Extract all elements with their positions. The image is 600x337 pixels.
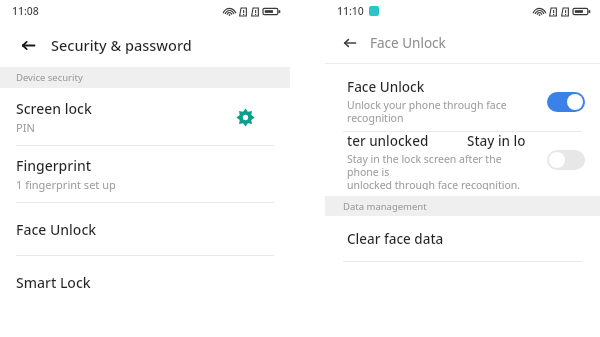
staticText: Screen lock <box>16 99 92 118</box>
staticText: Security & password <box>51 35 192 55</box>
staticText: Stay in the lock screen after the phone … <box>347 152 530 190</box>
staticText: Face Unlock <box>370 34 446 52</box>
button[interactable]: Toggle on <box>547 92 585 112</box>
staticText: Face Unlock <box>347 78 425 96</box>
staticText: Stay in lo <box>467 132 526 150</box>
staticText: ter unlocked <box>347 132 429 150</box>
button[interactable]: Toggle off <box>547 150 585 170</box>
staticText: PIN <box>16 120 35 135</box>
button[interactable]: Screen lock <box>0 88 290 145</box>
staticText: Smart Lock <box>16 273 91 292</box>
button[interactable]: Back <box>336 29 364 57</box>
staticText: Data management <box>343 200 427 213</box>
button[interactable]: Smart Lock <box>0 256 290 308</box>
button[interactable]: Back <box>13 30 43 60</box>
staticText: Unlock your phone through face recogniti… <box>347 98 507 125</box>
button[interactable]: Face Unlock <box>325 72 600 131</box>
staticText: Fingerprint <box>16 156 92 175</box>
staticText: 11:10 <box>337 4 364 18</box>
staticText: Face Unlock <box>16 220 97 239</box>
button[interactable]: Screen lock settings <box>230 102 260 132</box>
staticText: 11:08 <box>12 4 39 18</box>
button[interactable]: Fingerprint <box>0 146 290 202</box>
staticText: Device security <box>16 71 83 84</box>
staticText: 1 fingerprint set up <box>16 177 116 192</box>
button[interactable]: Face Unlock <box>0 203 290 255</box>
button[interactable]: ter unlocked <box>325 132 600 190</box>
staticText: Clear face data <box>347 230 444 248</box>
button[interactable]: Clear face data <box>325 216 600 261</box>
